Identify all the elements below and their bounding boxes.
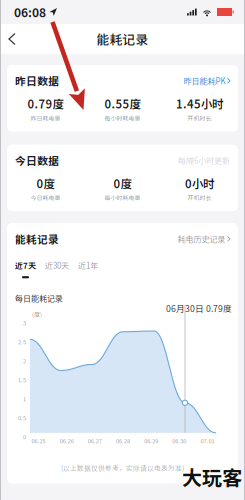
staticText: 每日能耗记录	[15, 292, 63, 304]
staticText: 0.55度	[104, 95, 140, 112]
staticText: 06.27	[88, 437, 102, 445]
staticText: 0小时	[185, 175, 214, 191]
staticText: 大玩客	[182, 462, 242, 491]
staticText: 06.26	[60, 437, 74, 445]
staticText: 2	[23, 357, 26, 365]
staticText: (度)	[32, 310, 42, 319]
staticText: (以上数据仅供参考，实际请以电表为准)	[61, 463, 184, 473]
staticText: 06月30日 0.79度	[166, 302, 232, 314]
staticText: 07.01	[200, 437, 214, 445]
staticText: 06.30	[172, 437, 186, 445]
staticText: 0度	[36, 175, 54, 191]
staticText: 2.5	[18, 338, 26, 346]
staticText: 能耗记录	[96, 30, 148, 48]
staticText: 0度	[113, 175, 131, 191]
button[interactable]: 昨日能耗PK	[183, 75, 230, 86]
button[interactable]: 近1年	[78, 259, 98, 278]
button[interactable]: 耗电历史记录	[177, 233, 230, 245]
staticText: 昨日数据	[15, 73, 59, 88]
staticText: 3	[23, 319, 26, 327]
staticText: 0.5	[18, 414, 26, 422]
staticText: 开机时长	[187, 193, 211, 202]
staticText: 06.29	[144, 437, 158, 445]
staticText: 每隔6小时更新	[178, 154, 230, 166]
button[interactable]: 近30天	[45, 259, 69, 278]
staticText: 每小时耗电量	[104, 114, 140, 123]
staticText: 近30天	[45, 259, 69, 271]
staticText: 近1年	[78, 259, 98, 271]
staticText: 06.28	[116, 437, 130, 445]
staticText: 今日耗电量	[30, 193, 60, 202]
staticText: 06.25	[32, 437, 46, 445]
staticText: 1.5	[18, 376, 26, 384]
staticText: 开机时长	[187, 114, 211, 123]
staticText: 能耗记录	[15, 231, 59, 246]
staticText: 今日数据	[15, 152, 59, 168]
staticText: 每小时耗电量	[104, 193, 140, 202]
staticText: 昨日能耗PK	[183, 75, 225, 86]
staticText: 0	[23, 433, 26, 441]
staticText: 06:08	[14, 3, 46, 21]
staticText: 1	[23, 395, 26, 403]
staticText: 昨日耗电量	[30, 114, 60, 123]
staticText: 耗电历史记录	[177, 233, 225, 245]
staticText: 0.79度	[27, 95, 63, 112]
button[interactable]: Back	[0, 25, 24, 52]
button[interactable]: 近7天	[15, 259, 36, 278]
staticText: 1.45小时	[176, 95, 223, 112]
staticText: 近7天	[15, 259, 36, 271]
